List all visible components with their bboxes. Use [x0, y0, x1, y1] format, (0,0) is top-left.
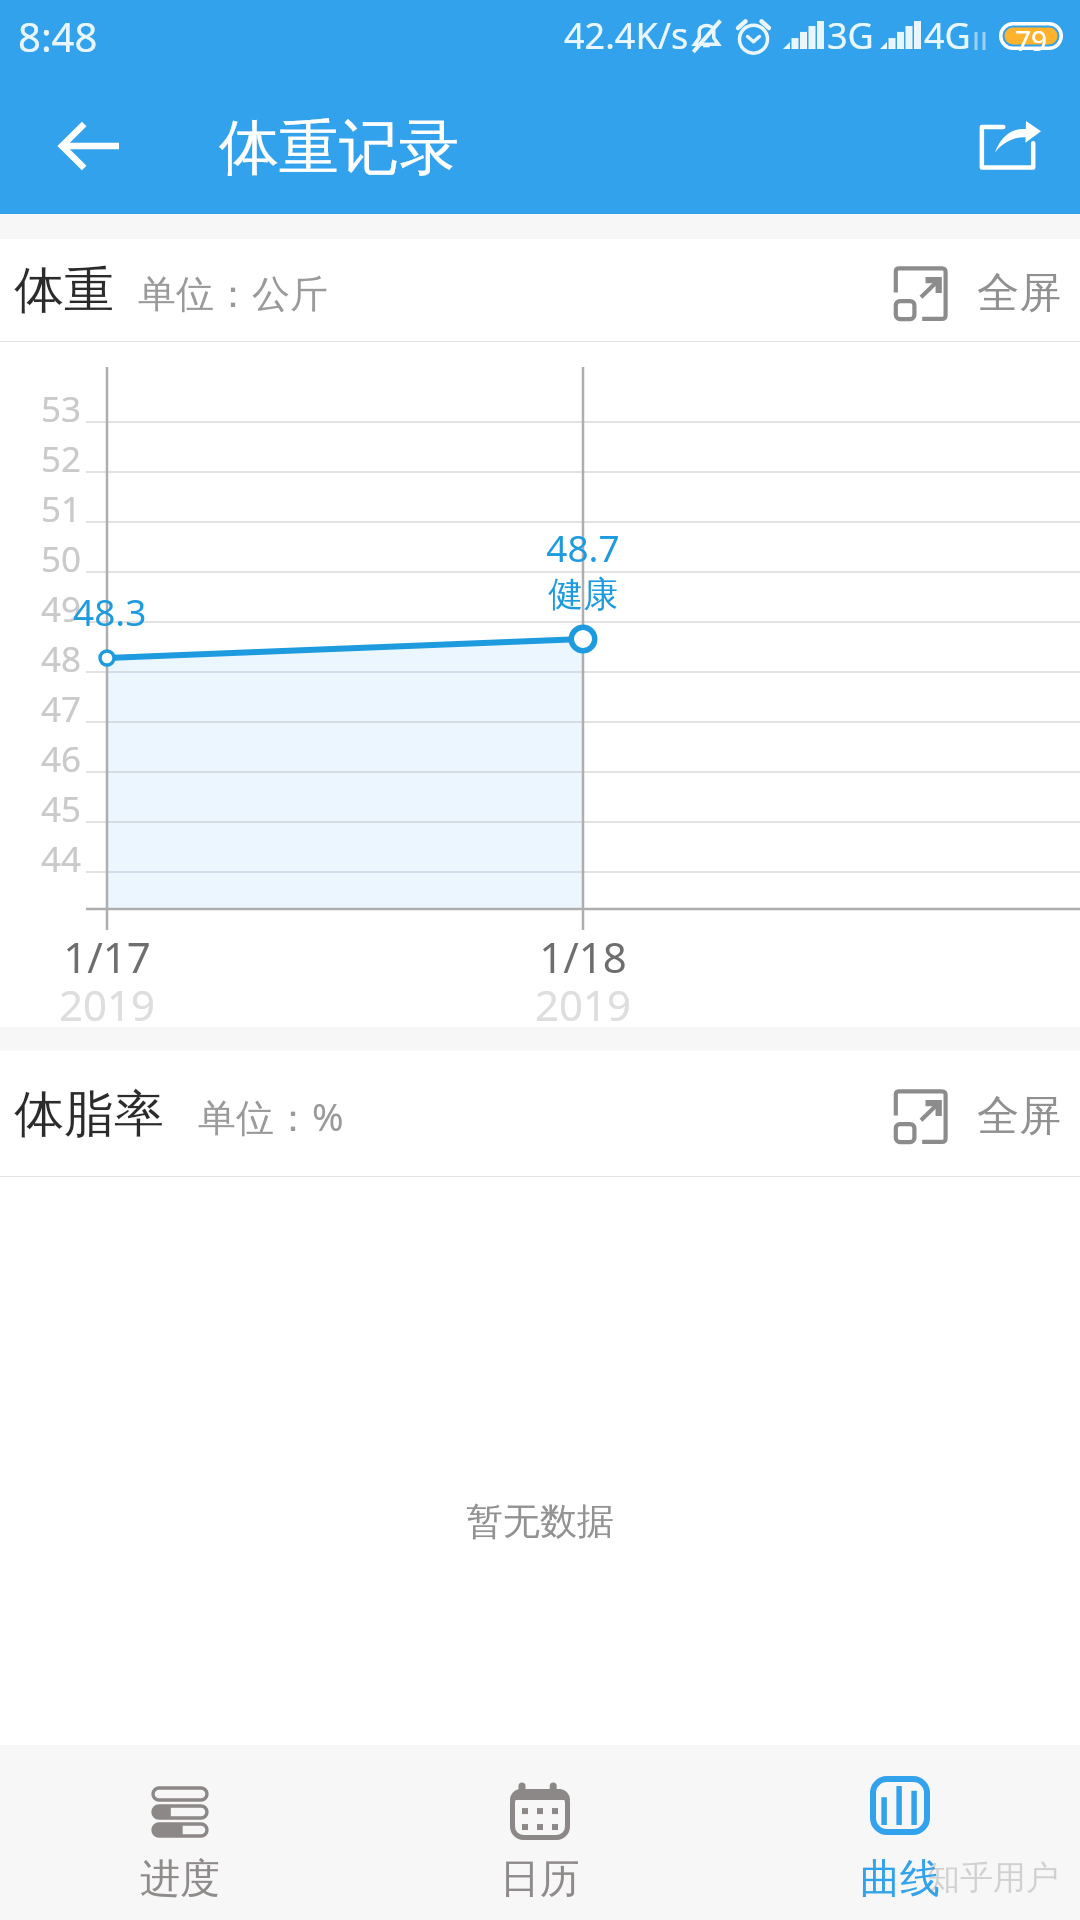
- staticText: 79: [1013, 21, 1049, 59]
- staticText: 2019: [7, 976, 207, 1033]
- staticText: 单位：公斤: [138, 270, 328, 318]
- staticText: 1/17: [7, 928, 207, 985]
- button[interactable]: 全屏: [891, 1086, 1061, 1146]
- staticText: 全屏: [977, 267, 1061, 320]
- staticText: 进度: [140, 1853, 220, 1903]
- staticText: 体重记录: [219, 110, 459, 186]
- staticText: 知乎用户: [927, 1857, 1059, 1899]
- staticText: 日历: [500, 1853, 580, 1903]
- button[interactable]: 进度: [0, 1745, 360, 1920]
- staticText: 单位：%: [198, 1090, 344, 1142]
- button[interactable]: 曲线: [720, 1745, 1080, 1920]
- staticText: 49: [2, 585, 81, 633]
- staticText: 48: [2, 635, 81, 683]
- staticText: 50: [2, 535, 81, 583]
- staticText: 8:48: [18, 9, 98, 63]
- staticText: 体重: [14, 259, 114, 322]
- staticText: 4G: [924, 11, 971, 60]
- staticText: 51: [2, 485, 81, 533]
- staticText: 42.4K/s: [564, 11, 689, 60]
- button[interactable]: 日历: [360, 1745, 720, 1920]
- staticText: 体脂率: [14, 1083, 164, 1146]
- button[interactable]: Share: [958, 97, 1058, 197]
- staticText: 健康: [483, 572, 683, 616]
- staticText: 48.3: [73, 586, 147, 636]
- staticText: 3G: [827, 11, 874, 60]
- staticText: 暂无数据: [466, 1498, 614, 1545]
- staticText: 44: [2, 835, 81, 883]
- staticText: 53: [2, 385, 81, 433]
- button[interactable]: Back: [40, 96, 140, 196]
- staticText: 48.7: [483, 522, 683, 572]
- staticText: 46: [2, 735, 81, 783]
- staticText: 45: [2, 785, 81, 833]
- button[interactable]: 全屏: [891, 263, 1061, 323]
- staticText: 1/18: [483, 928, 683, 985]
- staticText: 52: [2, 435, 81, 483]
- staticText: 全屏: [977, 1090, 1061, 1143]
- staticText: 47: [2, 685, 81, 733]
- staticText: 2019: [483, 976, 683, 1033]
- staticText: 曲线: [860, 1853, 940, 1903]
